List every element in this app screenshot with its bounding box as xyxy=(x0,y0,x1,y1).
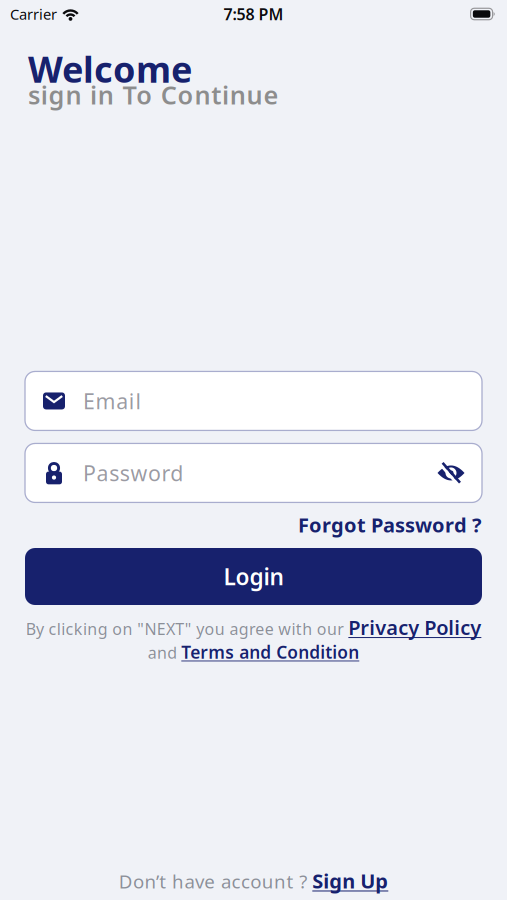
button[interactable]: Terms and Condition xyxy=(181,641,359,664)
staticText: Forgot Password ? xyxy=(298,511,482,538)
staticText: Don’t have account ? xyxy=(119,869,307,894)
button[interactable]: Login xyxy=(25,548,482,605)
staticText: Carrier xyxy=(10,4,57,24)
staticText: Welcome xyxy=(28,45,192,93)
button[interactable]: Show password xyxy=(437,461,465,484)
staticText: Sign Up xyxy=(312,867,388,894)
button[interactable]: Privacy Policy xyxy=(348,614,481,641)
button[interactable]: Forgot Password ? xyxy=(298,511,482,538)
staticText: and xyxy=(148,642,177,663)
staticText: Password xyxy=(83,459,183,487)
staticText: Privacy Policy xyxy=(348,614,481,641)
staticText: Email xyxy=(83,387,141,415)
staticText: By clicking on "NEXT" you agree with our xyxy=(26,618,344,639)
staticText: Terms and Condition xyxy=(181,641,359,664)
staticText: 7:58 PM xyxy=(223,3,283,25)
staticText: Login xyxy=(223,561,283,592)
button[interactable]: Sign Up xyxy=(312,867,388,894)
staticText: sign in To Continue xyxy=(28,78,278,111)
